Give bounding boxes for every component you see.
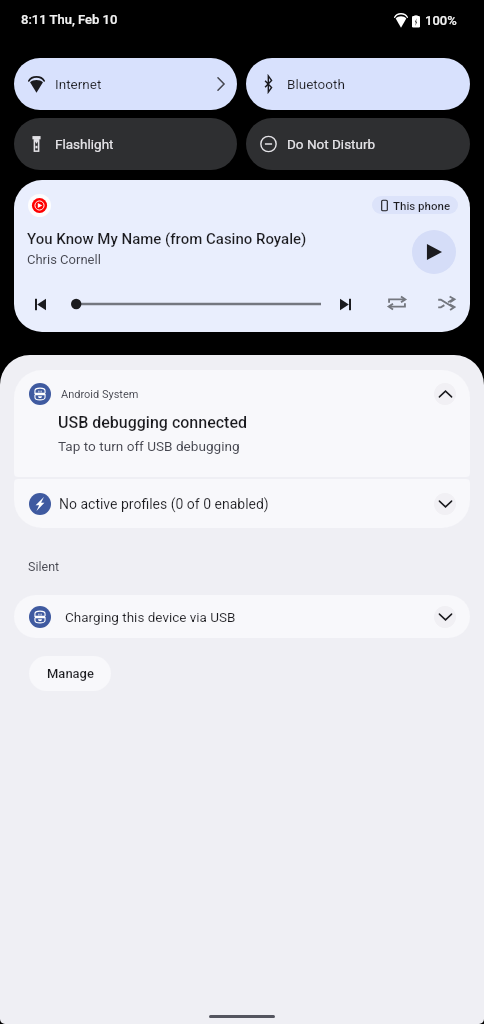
staticText: Do Not Disturb bbox=[287, 136, 458, 152]
button[interactable]: Expand bbox=[434, 493, 456, 515]
staticText: Internet bbox=[55, 76, 217, 92]
staticText: Bluetooth bbox=[287, 76, 458, 92]
button[interactable]: Bluetooth bbox=[246, 58, 470, 110]
staticText: Manage bbox=[47, 666, 94, 681]
button[interactable]: This phone bbox=[14, 180, 470, 332]
button[interactable]: Play bbox=[412, 230, 456, 274]
button[interactable]: Repeat bbox=[383, 289, 411, 317]
button[interactable]: Internet bbox=[14, 58, 237, 110]
button[interactable]: Previous bbox=[26, 290, 54, 318]
staticText: Tap to turn off USB debugging bbox=[58, 438, 240, 454]
staticText: No active profiles (0 of 0 enabled) bbox=[59, 496, 269, 512]
button[interactable]: Manage bbox=[29, 656, 111, 691]
button[interactable]: Collapse bbox=[434, 383, 456, 405]
button[interactable]: Expand bbox=[434, 606, 456, 628]
staticText: USB debugging connected bbox=[58, 413, 247, 432]
button[interactable]: Next bbox=[331, 290, 359, 318]
staticText: Android System bbox=[61, 388, 139, 401]
staticText: Chris Cornell bbox=[27, 252, 101, 267]
button[interactable]: This phone bbox=[372, 196, 458, 214]
staticText: You Know My Name (from Casino Royale) bbox=[27, 230, 307, 248]
button[interactable]: Flashlight bbox=[14, 118, 237, 170]
staticText: Flashlight bbox=[55, 136, 225, 152]
button[interactable]: No active profiles (0 of 0 enabled) bbox=[14, 479, 470, 528]
staticText: Silent bbox=[28, 559, 60, 574]
staticText: 8:11 Thu, Feb 10 bbox=[21, 12, 118, 27]
staticText: Charging this device via USB bbox=[65, 609, 236, 625]
staticText: 100% bbox=[425, 13, 457, 28]
button[interactable]: Do Not Disturb bbox=[246, 118, 470, 170]
button[interactable]: Shuffle bbox=[433, 289, 461, 317]
button[interactable]: Charging this device via USB bbox=[14, 595, 470, 638]
staticText: This phone bbox=[393, 199, 451, 212]
button[interactable]: Android System bbox=[14, 370, 470, 477]
